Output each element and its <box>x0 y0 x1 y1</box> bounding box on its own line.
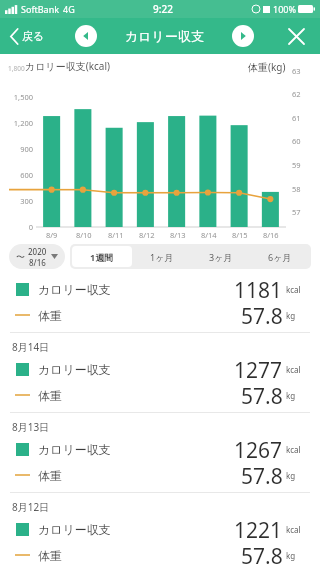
staticText: kg <box>286 470 296 481</box>
staticText: 1181 <box>234 276 283 302</box>
staticText: kg <box>286 390 296 401</box>
button[interactable]: 1週間 <box>72 246 132 267</box>
staticText: 体重 <box>38 548 62 563</box>
staticText: カロリー収支 <box>38 442 111 457</box>
staticText: 8/14 <box>201 230 217 240</box>
button[interactable]: Close <box>278 18 314 54</box>
button[interactable]: 体重 <box>0 542 320 568</box>
button[interactable]: 戻る <box>0 18 51 54</box>
staticText: 戻る <box>22 29 45 43</box>
button[interactable]: カロリー収支 <box>0 516 320 542</box>
staticText: 57 <box>292 207 301 217</box>
staticText: カロリー収支 <box>38 362 111 377</box>
button[interactable]: 体重 <box>0 382 320 408</box>
staticText: kg <box>286 550 296 561</box>
staticText: kcal <box>286 364 301 375</box>
staticText: 6ヶ月 <box>268 251 292 263</box>
staticText: 8/16 <box>263 230 279 240</box>
staticText: 体重 <box>38 388 62 403</box>
staticText: 8/12 <box>139 230 155 240</box>
staticText: 8/13 <box>170 230 186 240</box>
button[interactable]: 〜 <box>9 244 65 269</box>
staticText: 57.8 <box>241 462 283 488</box>
staticText: カロリー収支 <box>38 522 111 537</box>
staticText: 0 <box>0 222 33 232</box>
staticText: 8月14日 <box>12 340 50 354</box>
staticText: 1277 <box>234 356 283 382</box>
button[interactable]: Next <box>232 25 254 47</box>
staticText: 1221 <box>234 516 283 542</box>
staticText: kcal <box>286 524 301 535</box>
button[interactable]: 体重 <box>0 302 320 328</box>
staticText: 61 <box>292 113 301 123</box>
staticText: 1,800 <box>8 64 25 73</box>
staticText: 300 <box>0 196 33 206</box>
staticText: カロリー収支 <box>38 282 111 297</box>
staticText: kcal <box>286 284 301 295</box>
staticText: 9:22 <box>153 2 173 16</box>
staticText: 1,500 <box>0 92 33 102</box>
staticText: 60 <box>292 136 301 146</box>
button[interactable]: 体重 <box>0 462 320 488</box>
button[interactable]: Previous <box>75 25 97 47</box>
staticText: 59 <box>292 160 301 170</box>
staticText: カロリー収支 <box>125 28 204 44</box>
button[interactable]: カロリー収支 <box>0 276 320 302</box>
staticText: 8/16 <box>29 257 46 268</box>
staticText: 8/11 <box>108 230 124 240</box>
staticText: 600 <box>0 170 33 180</box>
staticText: 8/9 <box>46 230 58 240</box>
staticText: 〜 <box>16 251 25 262</box>
staticText: kcal <box>286 444 301 455</box>
staticText: 1267 <box>234 436 283 462</box>
staticText: 2020 <box>28 246 47 257</box>
staticText: 4G <box>63 3 75 15</box>
staticText: 900 <box>0 144 33 154</box>
staticText: 8月12日 <box>12 500 50 514</box>
staticText: kg <box>286 310 296 321</box>
staticText: 体重 <box>38 308 62 323</box>
staticText: 8/10 <box>76 230 92 240</box>
staticText: 体重 <box>38 468 62 483</box>
staticText: 1ヶ月 <box>150 251 174 263</box>
staticText: カロリー収支(kcal) <box>25 59 111 73</box>
staticText: 8月13日 <box>12 420 50 434</box>
staticText: 3ヶ月 <box>209 251 233 263</box>
staticText: SoftBank <box>21 3 59 15</box>
staticText: 体重(kg) <box>248 60 286 74</box>
button[interactable]: 1ヶ月 <box>132 246 191 267</box>
staticText: 1,200 <box>0 118 33 128</box>
staticText: 8/15 <box>232 230 248 240</box>
button[interactable]: カロリー収支 <box>0 436 320 462</box>
staticText: 57.8 <box>241 382 283 408</box>
button[interactable]: 3ヶ月 <box>191 246 250 267</box>
staticText: 63 <box>292 66 301 76</box>
staticText: 58 <box>292 184 301 194</box>
staticText: 62 <box>292 89 301 99</box>
staticText: 100% <box>273 3 296 15</box>
staticText: 57.8 <box>241 302 283 328</box>
button[interactable]: 6ヶ月 <box>250 246 309 267</box>
staticText: 57.8 <box>241 542 283 568</box>
staticText: 1週間 <box>90 251 114 263</box>
button[interactable]: カロリー収支 <box>0 356 320 382</box>
